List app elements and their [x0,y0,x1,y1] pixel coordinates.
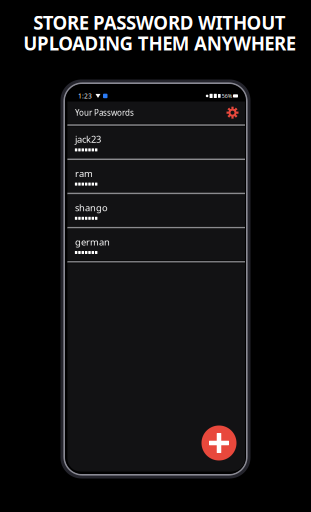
button[interactable]: ram [67,161,245,192]
button[interactable]: jack23 [67,126,245,158]
staticText: ram [75,167,93,180]
staticText: UPLOADING THEM ANYWHERE [23,31,296,56]
button[interactable]: Settings [226,107,238,119]
staticText: german [75,236,110,248]
staticText: 1:23 [78,91,92,100]
button[interactable]: german [67,229,245,261]
staticText: Your Passwords [75,107,134,118]
staticText: STORE PASSWORD WITHOUT [33,10,286,35]
staticText: shango [75,201,108,214]
staticText: 56% [222,92,232,99]
button[interactable]: shango [67,195,245,226]
button[interactable]: Add password [201,425,236,460]
staticText: jack23 [75,133,101,145]
